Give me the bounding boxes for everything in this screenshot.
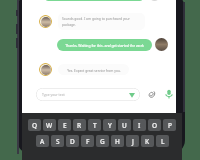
button[interactable]: Sounds good. I am going to purchased you… bbox=[58, 13, 145, 30]
button[interactable]: U bbox=[118, 119, 131, 131]
button[interactable]: W bbox=[43, 119, 56, 131]
staticText: K bbox=[145, 137, 150, 146]
staticText: Q bbox=[32, 121, 38, 130]
staticText: Sounds good. I am going to purchased you… bbox=[62, 16, 130, 20]
staticText: T bbox=[93, 121, 97, 130]
staticText: Type your text bbox=[42, 92, 65, 97]
button[interactable]: F bbox=[81, 135, 94, 147]
staticText: H bbox=[115, 137, 120, 146]
button[interactable]: R bbox=[73, 119, 86, 131]
staticText: I bbox=[138, 121, 141, 130]
button[interactable]: Attach file bbox=[146, 89, 157, 100]
button[interactable]: D bbox=[66, 135, 79, 147]
staticText: G bbox=[100, 137, 105, 146]
button[interactable]: K bbox=[141, 135, 154, 147]
button[interactable]: L bbox=[156, 135, 169, 147]
staticText: E bbox=[63, 121, 67, 130]
button[interactable]: G bbox=[96, 135, 109, 147]
staticText: Yes. Expect great service from you. bbox=[67, 68, 121, 72]
staticText: Y bbox=[108, 121, 112, 130]
staticText: package. bbox=[62, 22, 76, 26]
button[interactable]: Yes. Expect great service from you. bbox=[58, 64, 129, 75]
staticText: L bbox=[161, 137, 165, 146]
button[interactable]: E bbox=[58, 119, 71, 131]
button[interactable]: Q bbox=[28, 119, 41, 131]
staticText: O bbox=[152, 121, 158, 130]
staticText: A bbox=[40, 137, 45, 146]
button[interactable]: O bbox=[148, 119, 161, 131]
staticText: U bbox=[122, 121, 127, 130]
staticText: R bbox=[77, 121, 82, 130]
staticText: S bbox=[56, 137, 60, 146]
button[interactable]: T bbox=[88, 119, 101, 131]
staticText: Thanks. Waiting for this. and get starte… bbox=[65, 43, 144, 48]
staticText: P bbox=[168, 121, 172, 130]
button[interactable]: Thanks. Waiting for this. and get starte… bbox=[57, 39, 152, 51]
button[interactable]: J bbox=[126, 135, 139, 147]
button[interactable]: P bbox=[163, 119, 176, 131]
button[interactable]: A bbox=[36, 135, 49, 147]
button[interactable]: My avatar bbox=[155, 38, 168, 51]
button[interactable]: Y bbox=[103, 119, 116, 131]
staticText: J bbox=[132, 137, 134, 146]
button[interactable]: S bbox=[51, 135, 64, 147]
button[interactable]: H bbox=[111, 135, 124, 147]
button[interactable]: I bbox=[133, 119, 146, 131]
staticText: D bbox=[70, 137, 75, 146]
button[interactable]: Voice message bbox=[163, 88, 175, 100]
button[interactable]: Contact avatar bbox=[39, 15, 52, 28]
button[interactable]: Contact avatar bbox=[39, 63, 52, 76]
staticText: W bbox=[46, 121, 53, 130]
button[interactable]: Type your text bbox=[36, 88, 140, 101]
staticText: F bbox=[86, 137, 90, 146]
button[interactable] bbox=[44, 0, 144, 1]
